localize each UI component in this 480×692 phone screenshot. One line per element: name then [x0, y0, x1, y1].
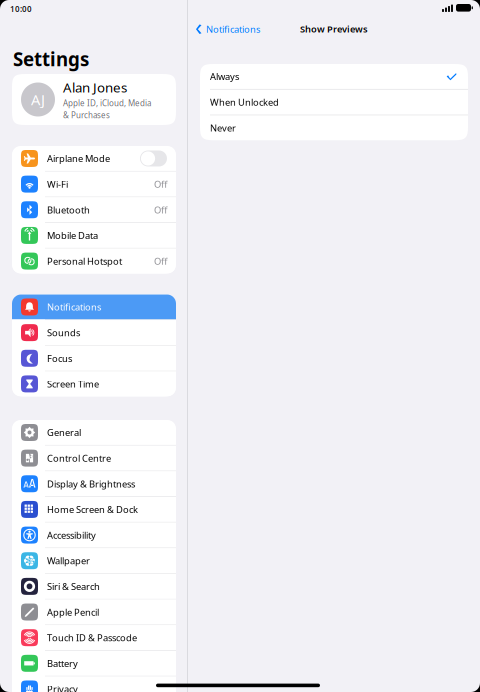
staticText: Wallpaper	[47, 554, 90, 567]
button[interactable]: Sounds	[12, 320, 176, 345]
staticText: Off	[154, 255, 167, 267]
button[interactable]: AJ	[12, 74, 176, 125]
staticText: General	[47, 426, 81, 439]
staticText: Off	[154, 204, 167, 216]
staticText: & Purchases	[63, 110, 110, 120]
button[interactable]: When Unlocked	[200, 90, 468, 115]
staticText: Sounds	[47, 326, 80, 339]
button[interactable]: Display & Brightness	[12, 471, 176, 496]
staticText: 10:00	[10, 3, 32, 14]
staticText: Screen Time	[47, 378, 99, 390]
button[interactable]: Touch ID & Passcode	[12, 625, 176, 650]
staticText: Display & Brightness	[47, 478, 135, 490]
button[interactable]: Screen Time	[12, 371, 176, 396]
button[interactable]: Notifications	[12, 294, 176, 319]
button[interactable]: Never	[200, 115, 468, 140]
staticText: AJ	[31, 90, 45, 109]
staticText: Notifications	[47, 301, 101, 313]
staticText: Siri & Search	[47, 580, 100, 593]
staticText: Apple Pencil	[47, 606, 99, 618]
staticText: Personal Hotspot	[47, 255, 122, 267]
button[interactable]: Accessibility	[12, 523, 176, 547]
button[interactable]: Siri & Search	[12, 574, 176, 599]
staticText: Accessibility	[47, 529, 96, 541]
staticText: Off	[154, 178, 167, 190]
button[interactable]: Mobile Data	[12, 223, 176, 248]
staticText: Never	[210, 122, 236, 134]
staticText: Alan Jones	[63, 78, 127, 96]
staticText: Wi-Fi	[47, 178, 68, 190]
staticText: Bluetooth	[47, 204, 90, 216]
button[interactable]: General	[12, 420, 176, 445]
staticText: Home Screen & Dock	[47, 503, 138, 516]
staticText: Focus	[47, 352, 72, 364]
button[interactable]: Focus	[12, 346, 176, 371]
button[interactable]: Notifications	[193, 20, 263, 38]
staticText: Touch ID & Passcode	[47, 631, 137, 644]
button[interactable]: Wallpaper	[12, 548, 176, 573]
staticText: Battery	[47, 657, 78, 669]
staticText: Show Previews	[300, 23, 368, 35]
button[interactable]: Airplane Mode	[12, 146, 176, 171]
button[interactable]: Control Centre	[12, 446, 176, 470]
staticText: When Unlocked	[210, 96, 279, 108]
staticText: Mobile Data	[47, 229, 98, 242]
staticText: Apple ID, iCloud, Media	[63, 98, 151, 108]
staticText: Settings	[13, 46, 89, 71]
button[interactable]: Wi-Fi	[12, 172, 176, 197]
button[interactable]: Home Screen & Dock	[12, 497, 176, 522]
button[interactable]: Personal Hotspot	[12, 249, 176, 273]
staticText: Control Centre	[47, 452, 111, 464]
button[interactable]: Always	[200, 64, 468, 89]
button[interactable]: Battery	[12, 651, 176, 676]
button[interactable]: Bluetooth	[12, 197, 176, 222]
button[interactable]: Apple Pencil	[12, 599, 176, 624]
staticText: Always	[210, 70, 239, 83]
staticText: Airplane Mode	[47, 152, 110, 165]
staticText: Privacy	[47, 683, 78, 692]
staticText: Notifications	[206, 23, 260, 35]
button[interactable]: Privacy	[12, 676, 176, 692]
